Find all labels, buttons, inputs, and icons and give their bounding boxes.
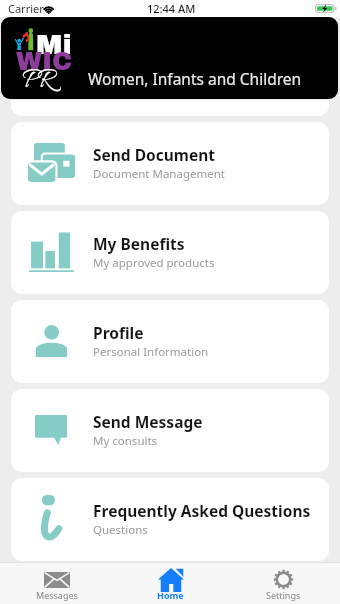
staticText: Frequently Asked Questions xyxy=(93,500,311,521)
button[interactable]: Messages xyxy=(0,563,114,604)
button[interactable]: My Benefits xyxy=(11,211,329,294)
button[interactable]: Frequently Asked Questions xyxy=(11,478,329,561)
button[interactable]: Send Document xyxy=(11,122,329,205)
button[interactable]: Settings xyxy=(227,563,340,604)
staticText: Messages xyxy=(36,589,78,601)
staticText: Mi xyxy=(36,29,72,59)
staticText: Document Management xyxy=(93,166,225,182)
staticText: WIC xyxy=(16,47,73,75)
staticText: Send Document xyxy=(93,144,215,165)
button[interactable]: Home xyxy=(114,563,227,604)
staticText: 12:44 AM xyxy=(147,1,196,16)
staticText: Women, Infants and Children xyxy=(88,68,302,89)
staticText: My consults xyxy=(93,433,158,449)
staticText: Carrier xyxy=(8,1,44,16)
staticText: Questions xyxy=(93,522,148,538)
button[interactable]: Send Message xyxy=(11,389,329,472)
staticText: My Benefits xyxy=(93,233,185,254)
staticText: Settings xyxy=(266,589,301,601)
staticText: Home xyxy=(157,589,184,601)
staticText: Profile xyxy=(93,322,144,343)
staticText: Send Message xyxy=(93,411,203,432)
staticText: My approved products xyxy=(93,255,215,271)
staticText: Personal Information xyxy=(93,344,209,360)
button[interactable]: Profile xyxy=(11,300,329,383)
staticText: PR xyxy=(22,65,53,99)
